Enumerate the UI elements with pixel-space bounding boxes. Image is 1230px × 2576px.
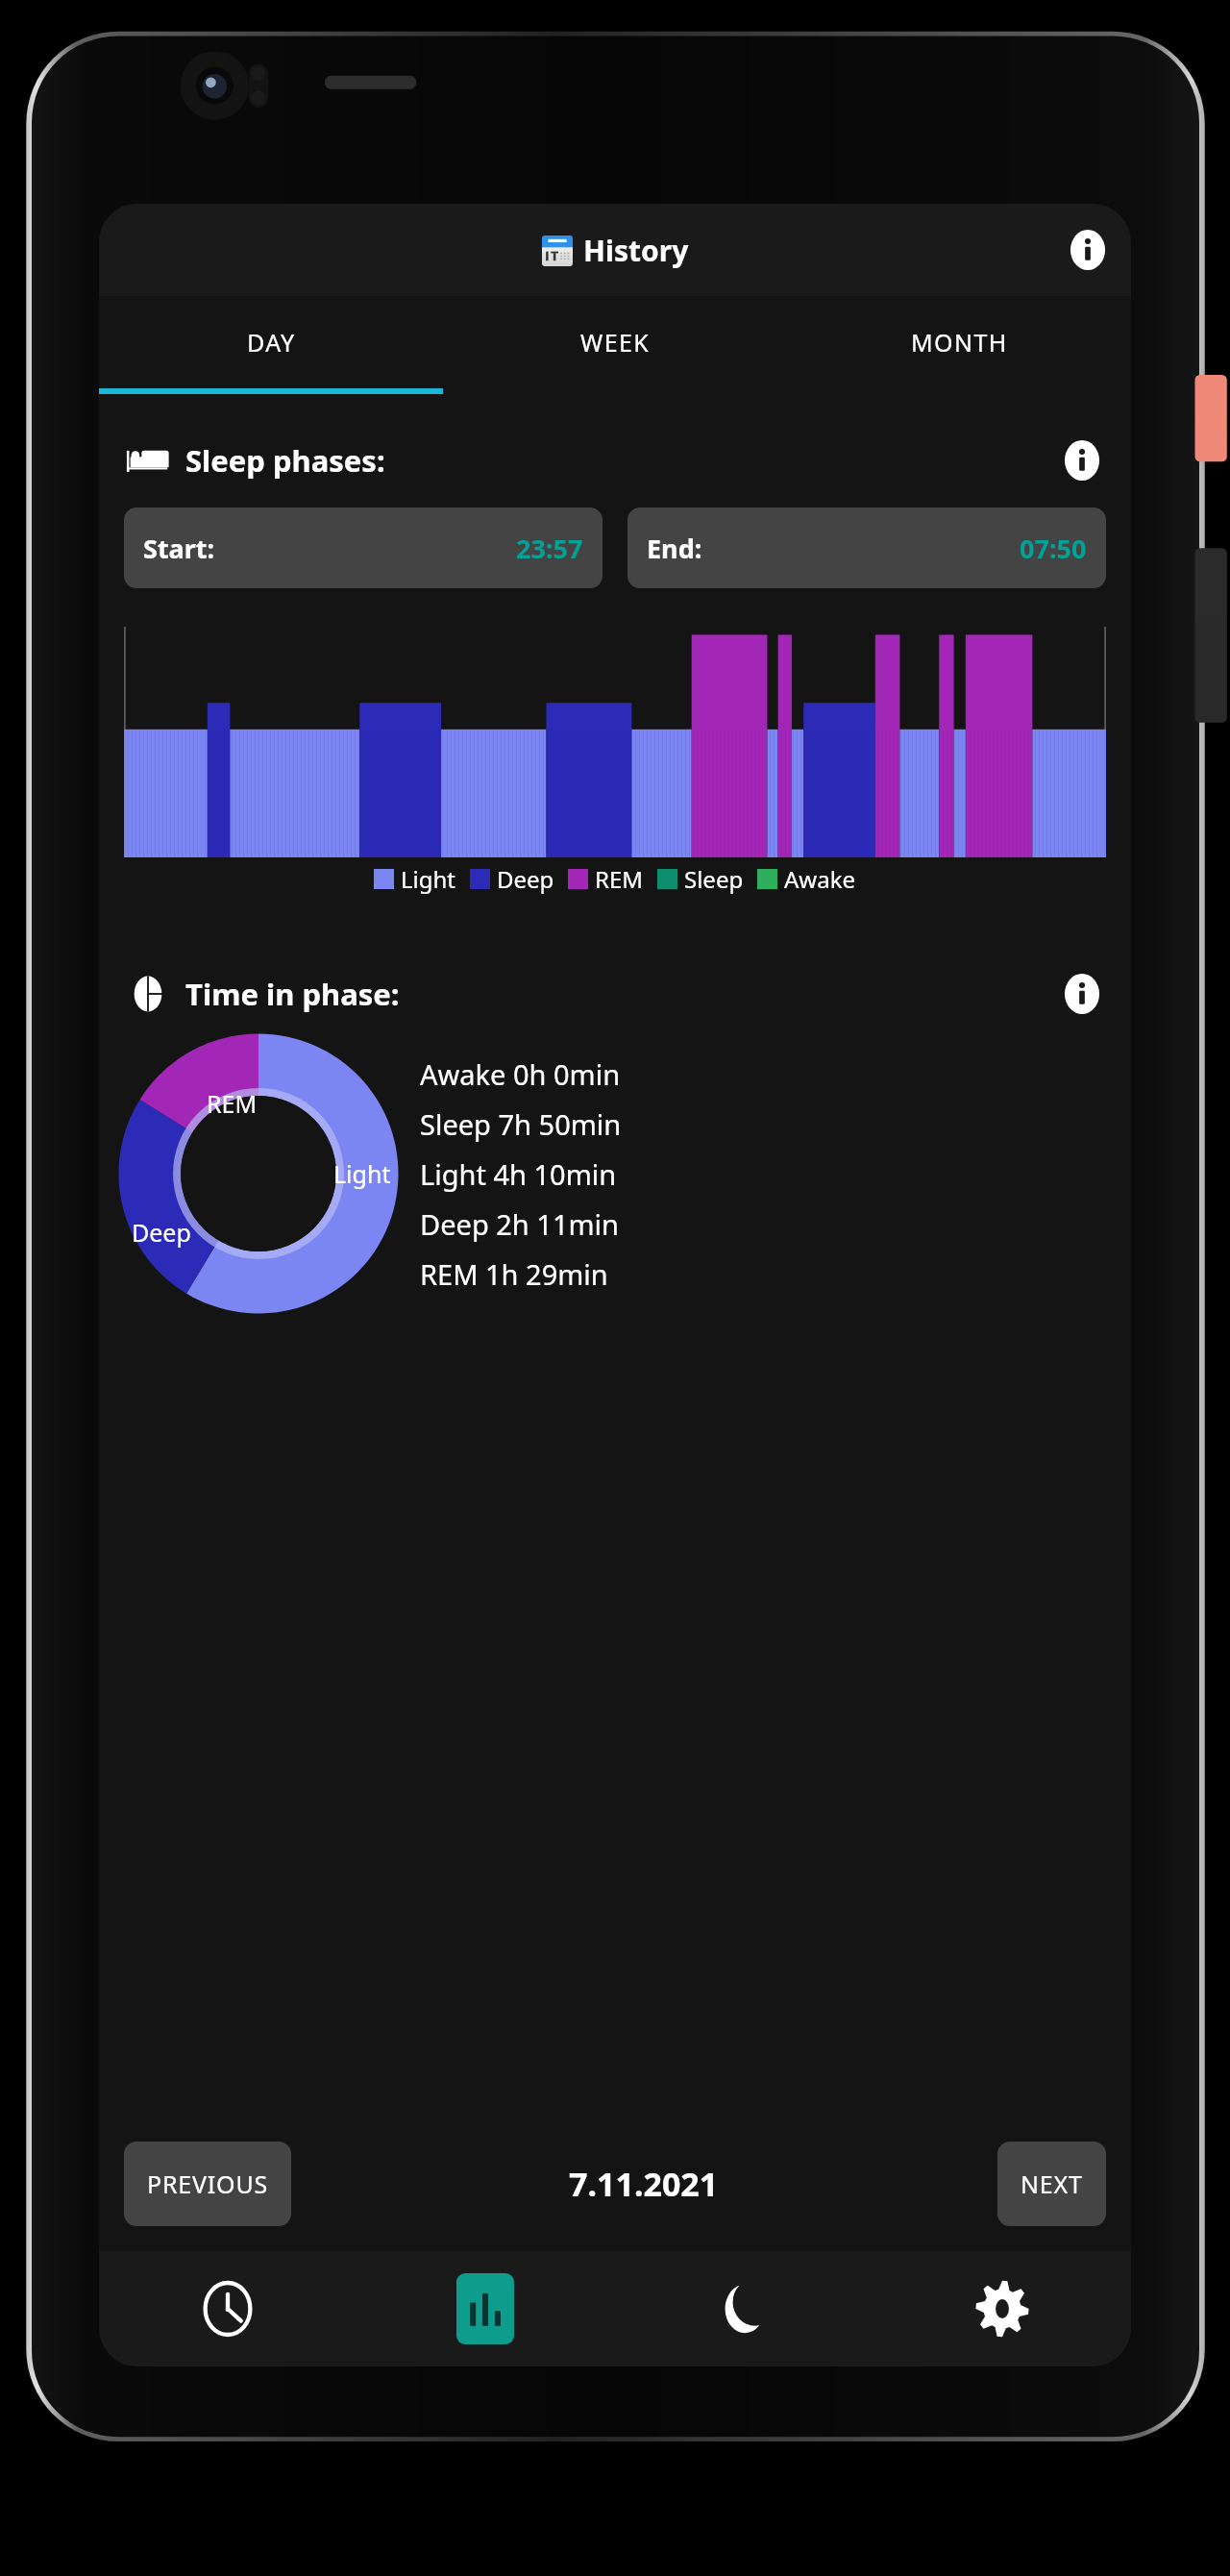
button[interactable]: Info Time in phase: — [1060, 972, 1104, 1016]
button[interactable]: DAY — [99, 296, 443, 388]
button[interactable]: Sleep — [614, 2251, 873, 2366]
button[interactable]: Info Sleep phases: — [1060, 438, 1104, 483]
staticText: Light — [333, 1157, 391, 1190]
staticText: Sleep phases: — [185, 440, 385, 481]
staticText: Start: — [143, 531, 215, 566]
button[interactable]: PREVIOUS — [124, 2142, 291, 2226]
staticText: End: — [647, 531, 702, 566]
staticText: Light 4h 10min — [420, 1155, 617, 1193]
button[interactable]: Start: — [124, 508, 603, 588]
staticText: 7.11.2021 — [569, 2162, 719, 2206]
button[interactable]: MONTH — [787, 296, 1131, 388]
staticText: 23:57 — [516, 531, 583, 566]
button[interactable]: Settings — [873, 2251, 1131, 2366]
staticText: NEXT — [1021, 2167, 1083, 2200]
button[interactable]: End: — [627, 508, 1106, 588]
button[interactable]: WEEK — [443, 296, 787, 388]
staticText: History — [583, 231, 689, 270]
staticText: WEEK — [580, 326, 651, 359]
staticText: PREVIOUS — [147, 2167, 268, 2200]
button[interactable]: Information — [1066, 228, 1110, 272]
staticText: REM — [207, 1087, 258, 1120]
staticText: 07:50 — [1020, 531, 1087, 566]
staticText: Time in phase: — [185, 974, 400, 1014]
staticText: Sleep — [684, 863, 744, 895]
button[interactable]: Alarm — [99, 2251, 357, 2366]
staticText: Deep — [497, 863, 554, 895]
staticText: Deep — [132, 1216, 191, 1249]
button[interactable]: Statistics — [357, 2251, 614, 2366]
staticText: Deep 2h 11min — [420, 1205, 620, 1243]
staticText: Sleep 7h 50min — [420, 1105, 622, 1143]
staticText: MONTH — [911, 326, 1008, 359]
staticText: REM 1h 29min — [420, 1255, 608, 1293]
button[interactable]: NEXT — [997, 2142, 1106, 2226]
staticText: Light — [401, 863, 456, 895]
staticText: REM — [595, 863, 644, 895]
staticText: DAY — [247, 326, 296, 359]
staticText: Awake — [784, 863, 856, 895]
staticText: Awake 0h 0min — [420, 1055, 621, 1093]
